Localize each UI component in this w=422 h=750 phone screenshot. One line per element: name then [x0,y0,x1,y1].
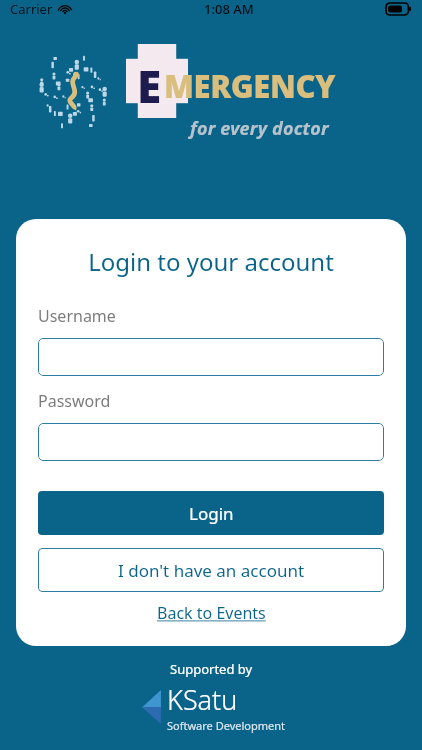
button[interactable]: Login [38,491,384,535]
staticText: I don't have an account [118,559,305,582]
staticText: Password [38,390,111,412]
staticText: Supported by [170,660,253,678]
staticText: MERGENCY [164,65,336,107]
staticText: 1:08 AM [204,0,254,18]
staticText: KSatu [167,681,238,718]
staticText: Username [38,305,116,327]
button[interactable]: Password field [38,423,384,461]
staticText: Software Development [167,718,285,733]
staticText: Back to Events [157,602,266,624]
staticText: for every doctor [190,116,329,141]
staticText: Login to your account [38,245,384,278]
staticText: Carrier [10,0,53,18]
button[interactable]: Back to Events [38,602,384,624]
button[interactable]: Username field [38,338,384,376]
button[interactable]: I don't have an account [38,548,384,592]
staticText: E [137,56,162,116]
staticText: Login [189,502,234,525]
